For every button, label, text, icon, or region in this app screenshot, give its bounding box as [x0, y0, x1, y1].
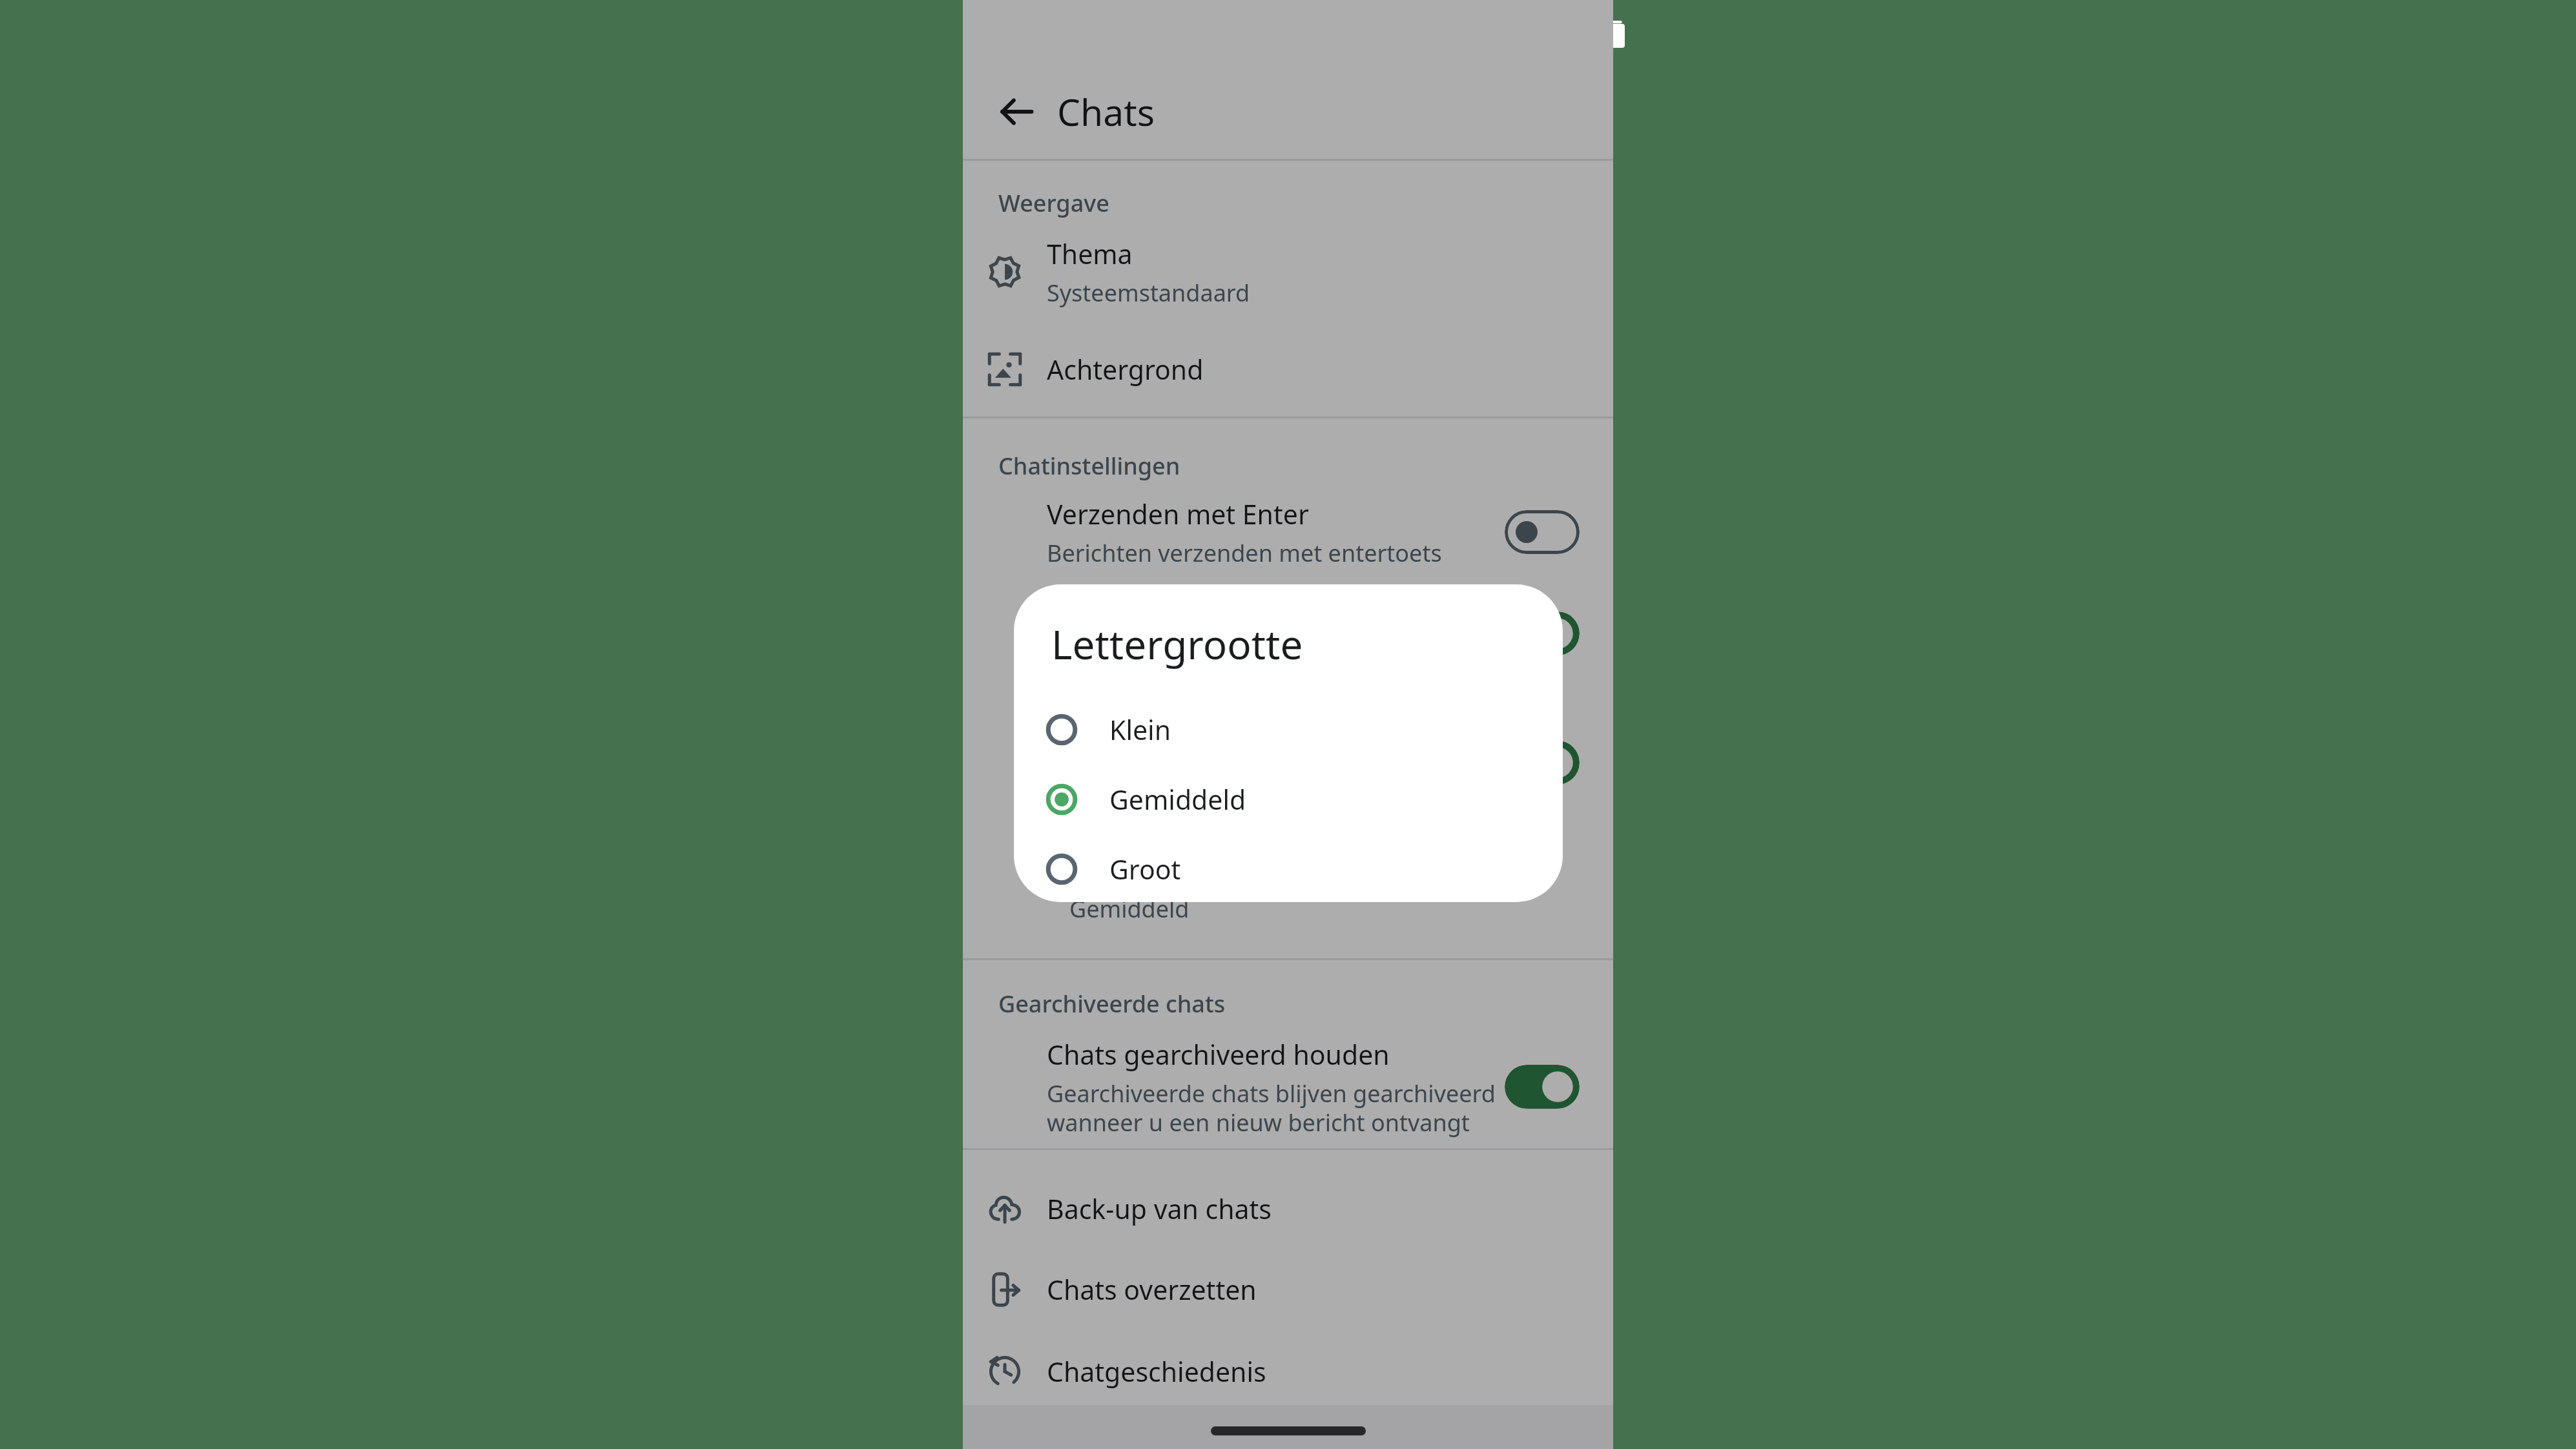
- button[interactable]: Chats gearchiveerd houden: [963, 1032, 1613, 1142]
- staticText: Weergave: [998, 187, 1109, 219]
- staticText: Systeemstandaard: [1047, 277, 1250, 309]
- staticText: Gemiddeld: [1069, 893, 1190, 925]
- button[interactable]: Toggle on: [1505, 741, 1580, 785]
- button[interactable]: Groot: [1014, 837, 1563, 901]
- button[interactable]: Toggle on: [1505, 1065, 1580, 1109]
- staticText: Chats: [1057, 87, 1155, 137]
- staticText: Achtergrond: [1047, 351, 1204, 387]
- staticText: Gearchiveerde chats: [998, 988, 1226, 1020]
- staticText: Chats gearchiveerd houden: [1047, 1036, 1390, 1073]
- staticText: Chatinstellingen: [998, 450, 1180, 482]
- button[interactable]: Toggle off: [1505, 510, 1580, 554]
- button[interactable]: Toggle on: [1505, 611, 1580, 655]
- button[interactable]: Chats overzetten: [963, 1256, 1613, 1323]
- staticText: Thema: [1047, 236, 1133, 272]
- staticText: Lettergrootte: [1051, 617, 1303, 671]
- button[interactable]: Gemiddeld: [1014, 767, 1563, 832]
- staticText: Berichten verzenden met entertoets: [1047, 537, 1442, 569]
- button[interactable]: Back: [981, 76, 1052, 147]
- staticText: Chatgeschiedenis: [1047, 1353, 1266, 1390]
- button[interactable]: Verzenden met Enter: [963, 494, 1613, 570]
- button[interactable]: Klein: [1014, 697, 1563, 762]
- staticText: Gearchiveerde chats blijven gearchiveerd…: [1047, 1078, 1496, 1138]
- button[interactable]: Back-up van chats: [963, 1175, 1613, 1242]
- staticText: Chats overzetten: [1047, 1271, 1257, 1308]
- button[interactable]: Achtergrond: [963, 336, 1613, 403]
- staticText: Gemiddeld: [1109, 781, 1246, 817]
- staticText: Back-up van chats: [1047, 1191, 1272, 1227]
- button[interactable]: Toggle on: [963, 595, 1613, 672]
- button[interactable]: Thema: [963, 234, 1613, 310]
- staticText: Verzenden met Enter: [1047, 496, 1309, 532]
- staticText: Groot: [1109, 851, 1181, 887]
- button[interactable]: Chatgeschiedenis: [963, 1338, 1613, 1405]
- button[interactable]: Toggle on: [963, 724, 1613, 801]
- staticText: Klein: [1109, 712, 1171, 748]
